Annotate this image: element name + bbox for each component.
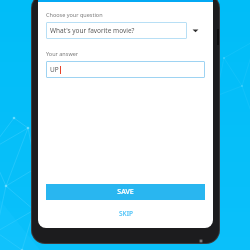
button[interactable]: UP (46, 61, 205, 78)
button[interactable]: SAVE (46, 184, 205, 200)
button[interactable]: SKIP (46, 207, 205, 219)
staticText: Choose your question (46, 11, 103, 18)
staticText: UP (50, 65, 59, 74)
staticText: Your answer (46, 50, 79, 57)
staticText: SKIP (119, 209, 133, 218)
staticText: SAVE (117, 187, 134, 197)
staticText: What's your favorite movie? (50, 26, 135, 35)
button[interactable]: Open question dropdown (187, 22, 203, 39)
button[interactable]: What's your favorite movie? (46, 22, 187, 39)
